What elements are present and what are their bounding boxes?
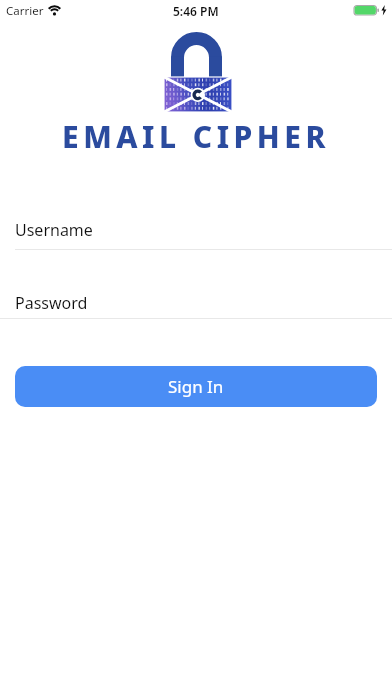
staticText: Sign In bbox=[168, 375, 224, 398]
button[interactable]: Sign In bbox=[15, 366, 377, 407]
staticText: Password bbox=[15, 292, 88, 314]
staticText: Username bbox=[15, 219, 93, 241]
button[interactable]: Username bbox=[0, 210, 392, 250]
staticText: EMAIL CIPHER bbox=[62, 116, 330, 157]
staticText: 5:46 PM bbox=[173, 3, 219, 19]
staticText: Carrier bbox=[6, 3, 44, 19]
button[interactable]: Password bbox=[0, 283, 392, 323]
